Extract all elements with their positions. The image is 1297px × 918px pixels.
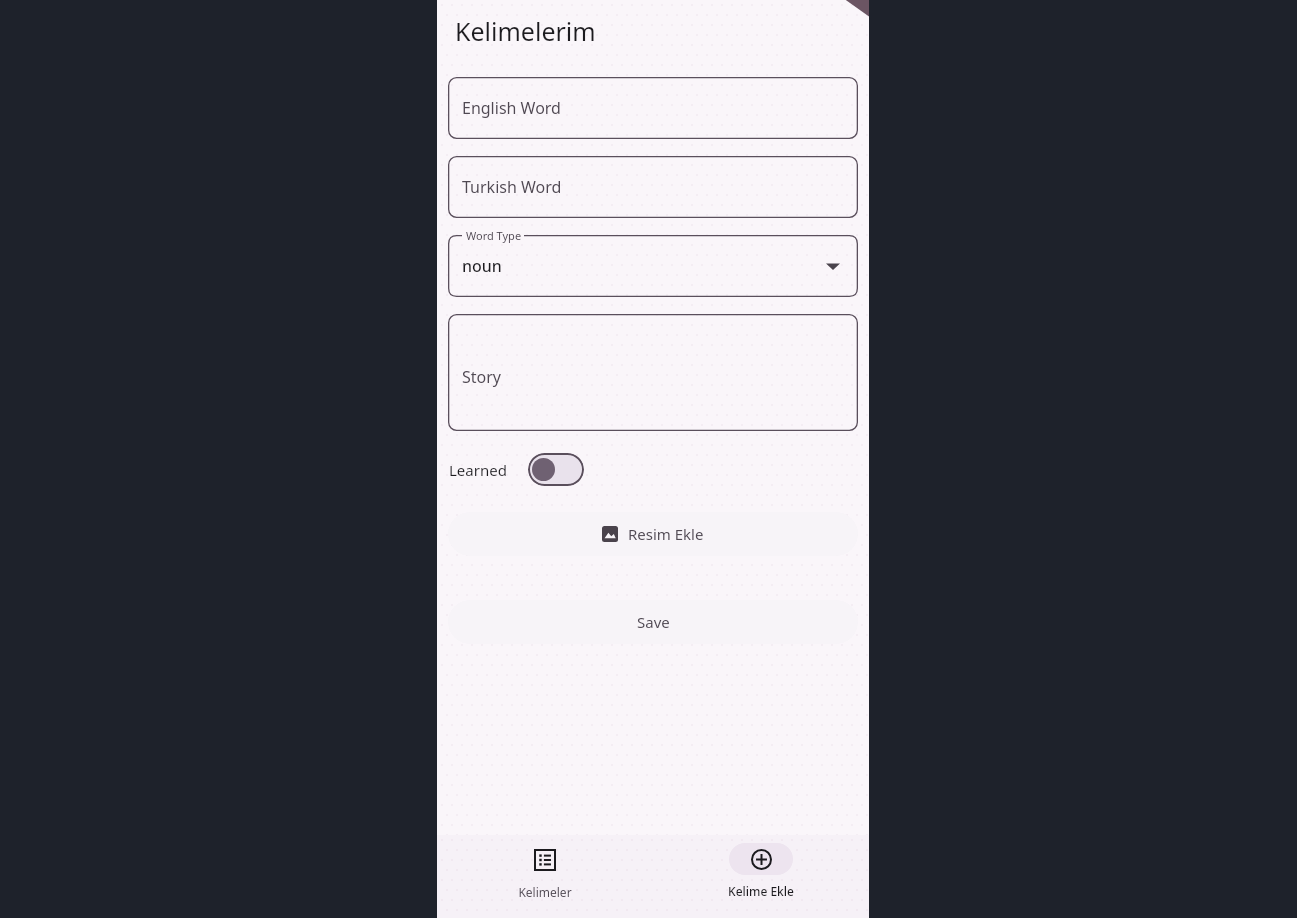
- button[interactable]: Word Type: [448, 235, 858, 297]
- staticText: Kelimelerim: [455, 14, 596, 48]
- button[interactable]: Turkish Word: [448, 156, 858, 218]
- staticText: Save: [637, 612, 670, 632]
- staticText: Word Type: [466, 228, 522, 243]
- staticText: English Word: [462, 97, 561, 119]
- button[interactable]: Story: [448, 314, 858, 431]
- button[interactable]: Kelime Ekle: [653, 835, 869, 918]
- staticText: Learned: [449, 460, 507, 480]
- button[interactable]: Learned toggle: [528, 453, 584, 486]
- staticText: Resim Ekle: [628, 524, 704, 544]
- button[interactable]: Resim Ekle: [448, 512, 858, 556]
- button[interactable]: Kelimeler: [437, 835, 653, 918]
- button[interactable]: Save: [448, 600, 858, 644]
- staticText: Turkish Word: [462, 176, 562, 198]
- staticText: Story: [462, 366, 502, 388]
- staticText: noun: [462, 255, 502, 277]
- staticText: Kelime Ekle: [728, 883, 794, 899]
- staticText: Kelimeler: [518, 884, 572, 900]
- button[interactable]: English Word: [448, 77, 858, 139]
